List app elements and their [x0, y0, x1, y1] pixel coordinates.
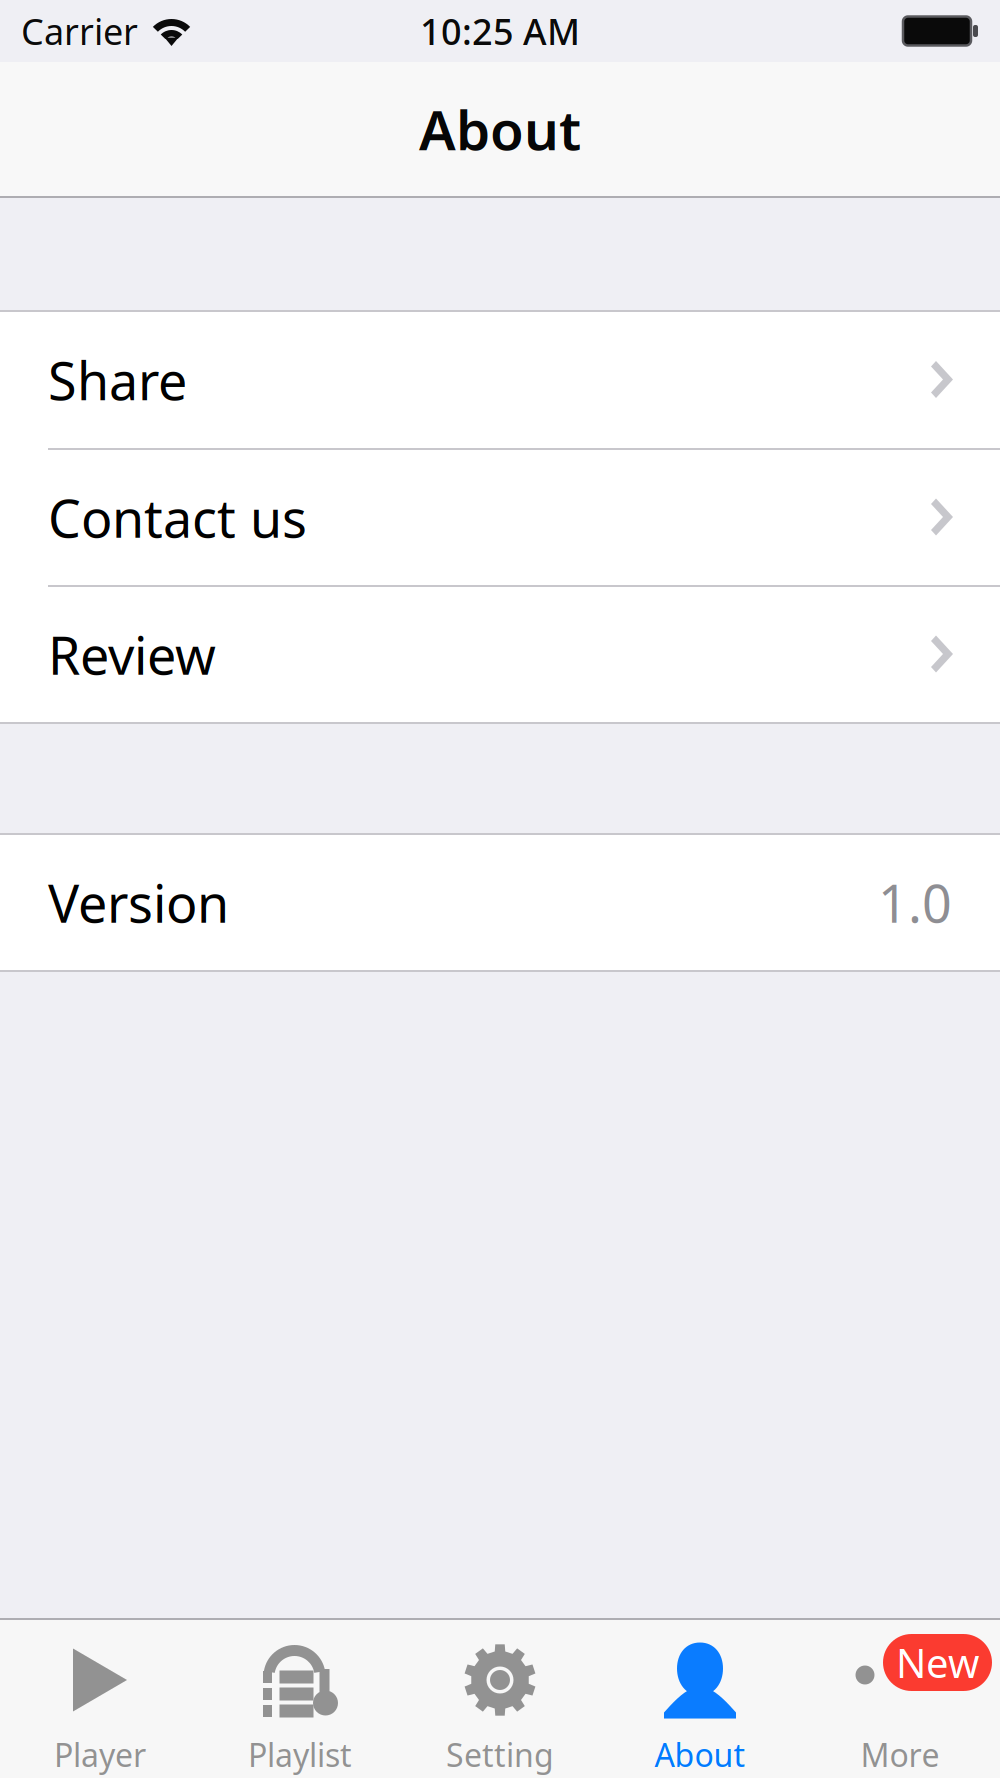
button[interactable]: Contact us	[0, 450, 1000, 585]
staticText: 10:25 AM	[420, 7, 580, 55]
staticText: About	[654, 1733, 745, 1776]
staticText: More	[860, 1733, 939, 1776]
button[interactable]: Share	[0, 312, 1000, 448]
button[interactable]: Setting	[400, 1619, 600, 1778]
staticText: New	[896, 1636, 979, 1689]
staticText: 1.0	[878, 868, 952, 937]
staticText: Review	[48, 620, 216, 689]
staticText: Player	[54, 1733, 146, 1776]
button[interactable]: More	[800, 1619, 1000, 1778]
staticText: Contact us	[48, 483, 307, 552]
staticText: Playlist	[248, 1733, 352, 1776]
staticText: Version	[48, 868, 229, 937]
staticText: Setting	[446, 1733, 554, 1776]
button[interactable]: About	[600, 1619, 800, 1778]
button[interactable]: Playlist	[200, 1619, 400, 1778]
button[interactable]: Player	[0, 1619, 200, 1778]
button[interactable]: Review	[0, 587, 1000, 722]
staticText: About	[419, 93, 581, 165]
staticText: Share	[48, 345, 187, 415]
staticText: Carrier	[21, 7, 138, 55]
